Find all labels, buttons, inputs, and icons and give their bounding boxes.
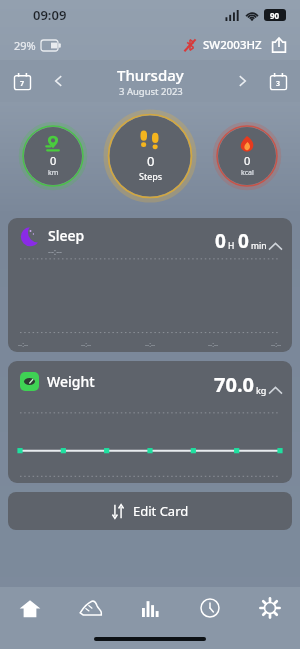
staticText: 0 [50,153,57,168]
button[interactable]: Next day [228,67,256,95]
button[interactable]: 0 [105,111,195,201]
button[interactable]: Weight [8,361,292,483]
staticText: Steps [139,170,163,182]
button[interactable]: Settings [240,587,300,629]
staticText: 7 [20,79,25,89]
button[interactable]: Previous day [44,67,72,95]
button[interactable]: Sleep [8,218,292,352]
staticText: --:-- [208,340,219,349]
staticText: H [228,240,235,252]
button[interactable]: Share [268,34,290,56]
staticText: km [48,168,59,178]
staticText: 0 [147,152,155,170]
button[interactable]: Home [0,587,60,629]
button[interactable]: Edit Card [8,492,292,530]
button[interactable]: Statistics [120,587,180,629]
staticText: 0 [215,228,226,254]
button[interactable]: Week view [9,68,35,94]
staticText: 90 [270,10,280,21]
button[interactable]: 0 [20,123,86,189]
staticText: --:-- [48,245,63,257]
staticText: SW2003HZ [203,37,262,53]
staticText: min [251,240,267,252]
button[interactable]: Activity [60,587,120,629]
staticText: 0 [244,153,251,168]
button[interactable]: Month view [265,68,291,94]
staticText: 0 [238,228,249,254]
staticText: Edit Card [133,502,189,520]
staticText: 3 August 2023 [119,85,183,98]
staticText: Weight [47,372,95,391]
staticText: --:-- [18,340,29,349]
staticText: --:-- [81,340,92,349]
staticText: --:-- [271,340,282,349]
staticText: Sleep [48,226,85,245]
staticText: kg [256,384,267,396]
staticText: 3 [276,79,281,89]
button[interactable]: 0 [214,123,280,189]
staticText: 09:09 [33,6,67,24]
staticText: --:-- [145,340,156,349]
staticText: Thursday [117,65,184,85]
staticText: 29% [14,38,36,53]
staticText: 70.0 [214,371,254,398]
staticText: kcal [241,168,254,178]
button[interactable]: History [180,587,240,629]
